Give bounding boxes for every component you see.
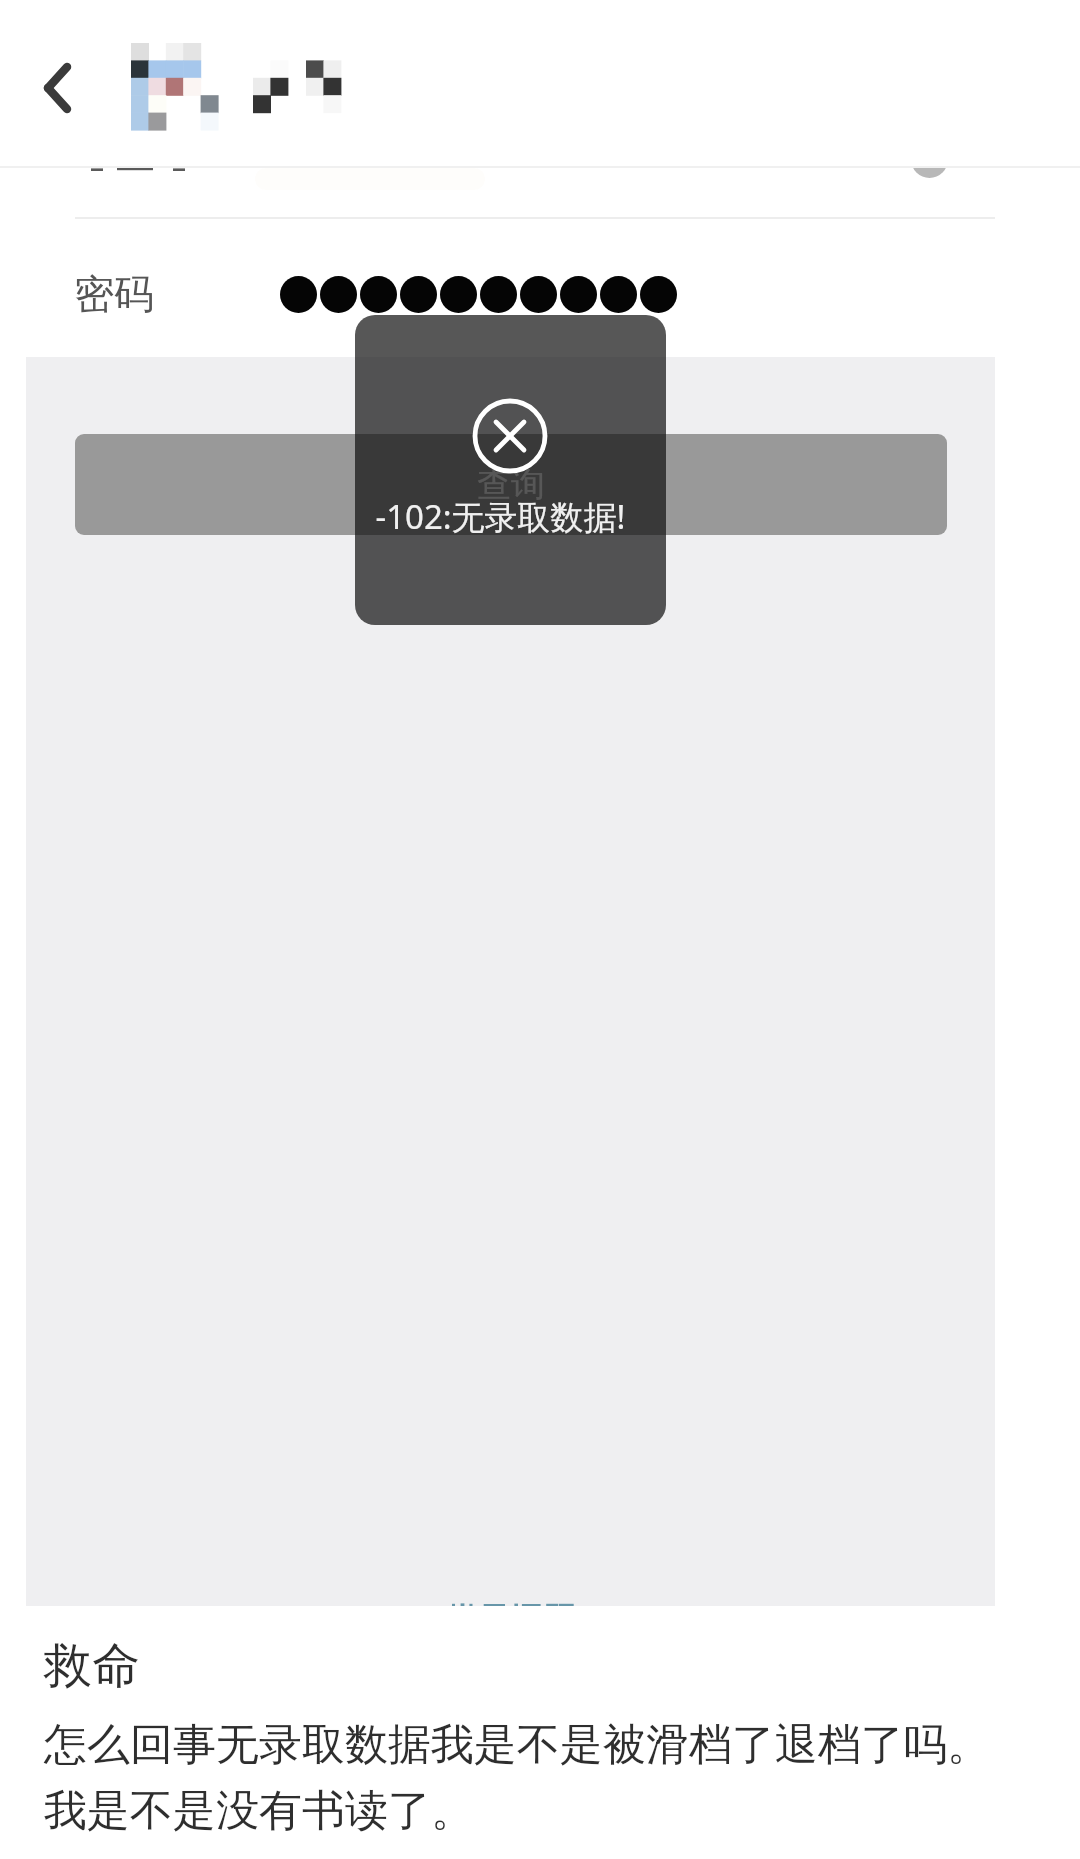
staticText: -102:无录取数据! [355,494,656,539]
staticText: 救命 [44,1636,140,1696]
button[interactable]: Back [10,42,100,134]
button[interactable]: 查询 [75,434,947,535]
staticText: 密码 [74,269,154,319]
staticText: 查询 [477,463,545,506]
staticText: 怎么回事无录取数据我是不是被滑档了退档了吗。我是不是没有书读了。 [44,1718,1004,1837]
button[interactable]: Screenshot [26,357,995,1606]
